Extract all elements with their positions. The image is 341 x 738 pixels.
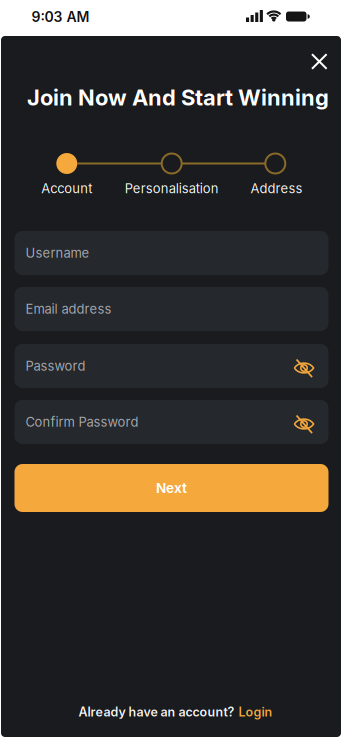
staticText: Already have an account? xyxy=(78,704,234,719)
button[interactable]: Password xyxy=(14,344,328,388)
button[interactable]: Next xyxy=(14,464,328,512)
staticText: 9:03 AM xyxy=(31,8,89,25)
staticText: Login xyxy=(238,704,272,719)
staticText: Account xyxy=(41,181,92,196)
staticText: Address xyxy=(250,181,302,196)
staticText: Confirm Password xyxy=(25,414,138,430)
staticText: Join Now And Start Winning xyxy=(27,84,329,111)
button[interactable]: Email address xyxy=(14,287,328,331)
button[interactable]: Login xyxy=(238,704,272,719)
staticText: Password xyxy=(25,358,85,374)
staticText: Personalisation xyxy=(125,181,219,196)
button[interactable]: Confirm Password xyxy=(14,400,328,444)
staticText: Next xyxy=(156,480,187,496)
staticText: Email address xyxy=(25,301,111,317)
staticText: Username xyxy=(25,245,89,261)
button[interactable]: Username xyxy=(14,231,328,275)
button[interactable] xyxy=(311,53,328,70)
